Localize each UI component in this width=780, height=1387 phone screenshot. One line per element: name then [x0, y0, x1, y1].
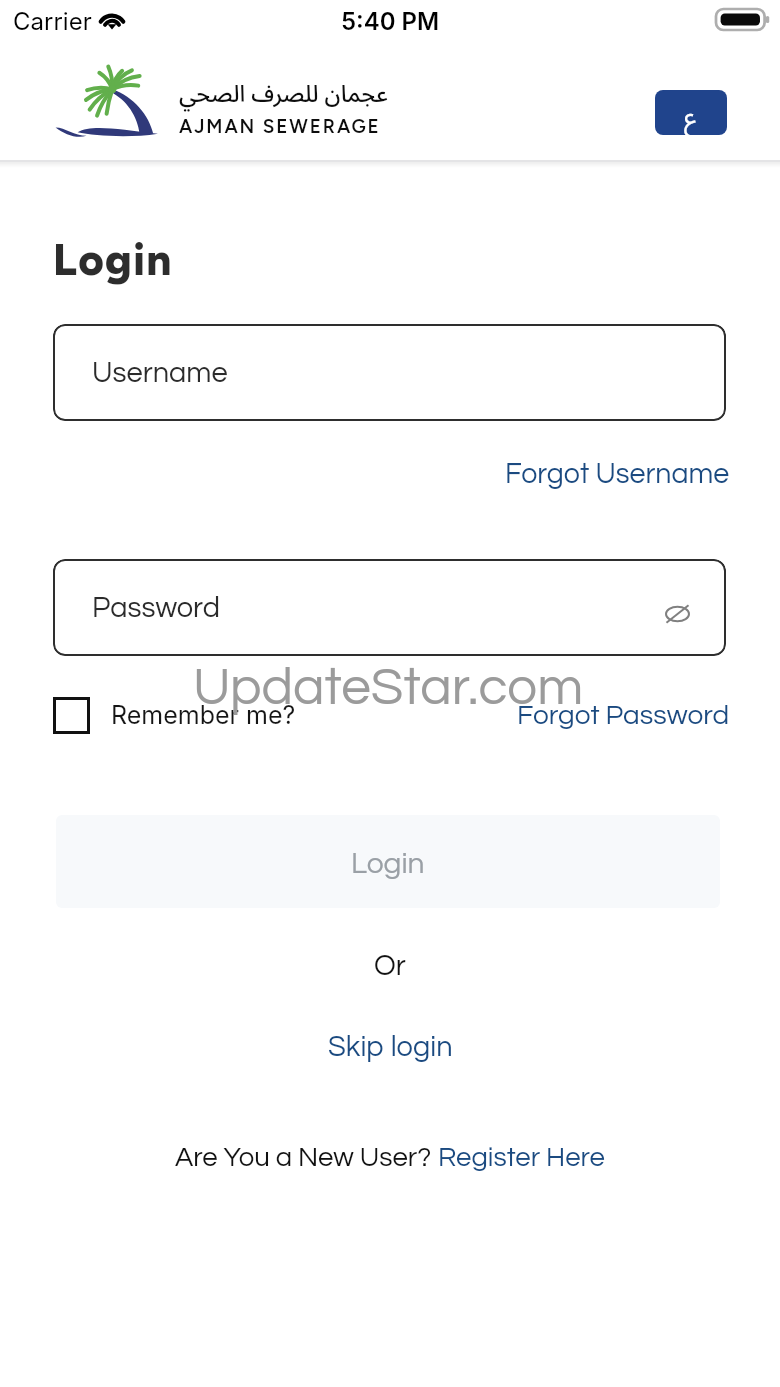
button[interactable]: Register Here: [438, 1130, 605, 1184]
button[interactable]: Show password: [653, 590, 701, 638]
button[interactable]: Forgot Password: [517, 691, 730, 739]
staticText: Forgot Password: [517, 701, 730, 730]
staticText: Remember me?: [111, 700, 296, 730]
staticText: Are You a New User?: [175, 1143, 438, 1171]
staticText: 5:40 PM: [341, 7, 440, 36]
staticText: UpdateStar.com: [193, 661, 584, 716]
button[interactable]: Login: [56, 815, 720, 908]
staticText: Username: [92, 358, 228, 388]
staticText: Carrier: [13, 7, 92, 36]
button[interactable]: Forgot Username: [495, 452, 730, 496]
staticText: AJMAN SEWERAGE: [179, 115, 381, 138]
button[interactable]: Skip login: [312, 1020, 469, 1074]
button[interactable]: Remember me?: [53, 691, 296, 739]
staticText: ع: [684, 90, 698, 135]
staticText: Login: [351, 848, 425, 879]
button[interactable]: ع: [655, 90, 727, 135]
staticText: Or: [0, 951, 780, 981]
staticText: Skip login: [328, 1032, 453, 1062]
button[interactable]: Username: [53, 324, 726, 421]
staticText: Register Here: [438, 1143, 605, 1171]
staticText: عجمان للصرف الصحي: [179, 70, 388, 119]
staticText: Login: [53, 233, 173, 286]
button[interactable]: Password: [53, 559, 726, 656]
staticText: Password: [92, 593, 221, 623]
staticText: Forgot Username: [505, 460, 730, 489]
